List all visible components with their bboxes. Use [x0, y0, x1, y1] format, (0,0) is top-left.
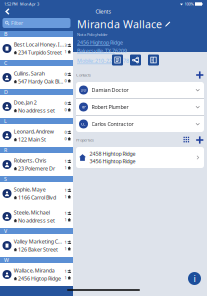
staticText: 1	[65, 159, 67, 164]
staticText: 1	[65, 217, 67, 222]
staticText: 1	[65, 269, 67, 274]
button[interactable]: Roberts, Chris	[0, 153, 73, 176]
staticText: Damian Doctor	[91, 86, 128, 94]
staticText: 126 Baker Street	[18, 246, 58, 253]
staticText: 3	[65, 43, 67, 48]
staticText: Carlos Contractor	[91, 120, 133, 128]
staticText: 1	[65, 194, 67, 199]
staticText: S	[4, 175, 7, 183]
staticText: 2456 Higtop Ridge	[18, 275, 61, 282]
staticText: DD	[80, 87, 86, 93]
button[interactable]: Wallace, Miranda	[0, 263, 73, 286]
staticText: Not a Policyholder	[77, 32, 108, 37]
staticText: 547 Hardy Oak Blvd	[18, 78, 64, 85]
button[interactable]: Back	[3, 7, 12, 16]
button[interactable]: Notes	[112, 54, 123, 65]
staticText: No address set	[18, 107, 55, 114]
staticText: Cullins, Sarah	[14, 70, 45, 77]
staticText: Bakersville, TX 76209	[77, 47, 127, 54]
staticText: 0	[65, 101, 67, 106]
staticText: 0	[65, 72, 67, 77]
staticText: Properties	[76, 137, 94, 143]
staticText: Best Local Honey, Inc.	[14, 41, 64, 48]
button[interactable]: 2458 Hightop Ridge	[76, 147, 204, 168]
staticText: Valley Marketing Compa…	[14, 238, 64, 245]
button[interactable]: Mobile: 210-226-6478	[77, 57, 129, 65]
staticText: 0	[65, 78, 67, 83]
staticText: No address set	[18, 217, 55, 224]
staticText: CC	[81, 121, 86, 127]
button[interactable]: Filter	[2, 18, 70, 28]
staticText: Wallace, Miranda	[14, 267, 55, 274]
staticText: 3456 Hightop Ridge	[89, 158, 135, 165]
staticText: 1:52 PM Mon Apr 3	[4, 1, 39, 7]
staticText: 1	[65, 188, 67, 193]
staticText: Contacts	[76, 72, 91, 78]
staticText: RP	[81, 104, 85, 110]
staticText: Filter	[11, 19, 23, 27]
staticText: Doe, Jan 2	[14, 99, 37, 106]
button[interactable]: Grid view	[182, 136, 191, 144]
staticText: 100%	[184, 1, 193, 7]
staticText: R	[4, 146, 7, 154]
staticText: 0	[65, 130, 67, 135]
staticText: Robert Plumber	[91, 103, 128, 111]
button[interactable]: Share	[130, 54, 141, 65]
staticText: 0	[65, 107, 67, 112]
staticText: B	[4, 30, 7, 38]
staticText: 1	[65, 275, 67, 280]
button[interactable]: Forms	[148, 54, 159, 65]
button[interactable]: Leonard, Andrew	[0, 124, 73, 147]
staticText: 122 Main St	[18, 136, 46, 143]
staticText: L	[4, 117, 7, 125]
staticText: Sophie, Maye	[14, 186, 46, 193]
button[interactable]: Cullins, Sarah	[0, 66, 73, 89]
staticText: 234 Turpido Street	[18, 49, 62, 56]
staticText: i	[193, 272, 195, 285]
staticText: 1	[65, 49, 67, 54]
button[interactable]: Valley Marketing Compa…	[0, 234, 73, 257]
staticText: 2456 Hightop Ridge	[77, 39, 123, 46]
staticText: Miranda Wallace	[77, 17, 162, 31]
button[interactable]: 2456 Hightop Ridge	[77, 39, 127, 55]
button[interactable]: RP	[76, 99, 204, 115]
staticText: 1	[65, 165, 67, 170]
staticText: 2458 Hightop Ridge	[89, 150, 135, 157]
button[interactable]: Add Properties	[195, 135, 204, 145]
button[interactable]: Doe, Jan 2	[0, 95, 73, 118]
staticText: 23 Polemere Dr	[18, 165, 55, 172]
staticText: W	[4, 256, 9, 264]
button[interactable]: Add Contacts	[195, 70, 204, 80]
staticText: C	[4, 59, 7, 67]
staticText: 1	[65, 240, 67, 245]
button[interactable]: Best Local Honey, Inc.	[0, 37, 73, 60]
button[interactable]: CC	[76, 116, 204, 132]
staticText: 1	[65, 211, 67, 216]
staticText: D	[4, 88, 8, 96]
button[interactable]: Info	[188, 272, 201, 285]
staticText: V	[4, 227, 7, 235]
staticText: 1166 Carrol Blvd	[18, 194, 56, 201]
staticText: Mobile: 210-226-6478	[77, 57, 129, 64]
staticText: Steele, Michael	[14, 209, 50, 216]
staticText: Leonard, Andrew	[14, 128, 54, 135]
staticText: 0	[65, 136, 67, 141]
staticText: Roberts, Chris	[14, 157, 47, 164]
button[interactable]: Steele, Michael	[0, 205, 73, 228]
button[interactable]: Sophie, Maye	[0, 182, 73, 205]
staticText: Clients	[95, 8, 111, 15]
button[interactable]: DD	[76, 82, 204, 98]
staticText: 1	[65, 246, 67, 251]
button[interactable]: Edit client	[165, 21, 170, 27]
